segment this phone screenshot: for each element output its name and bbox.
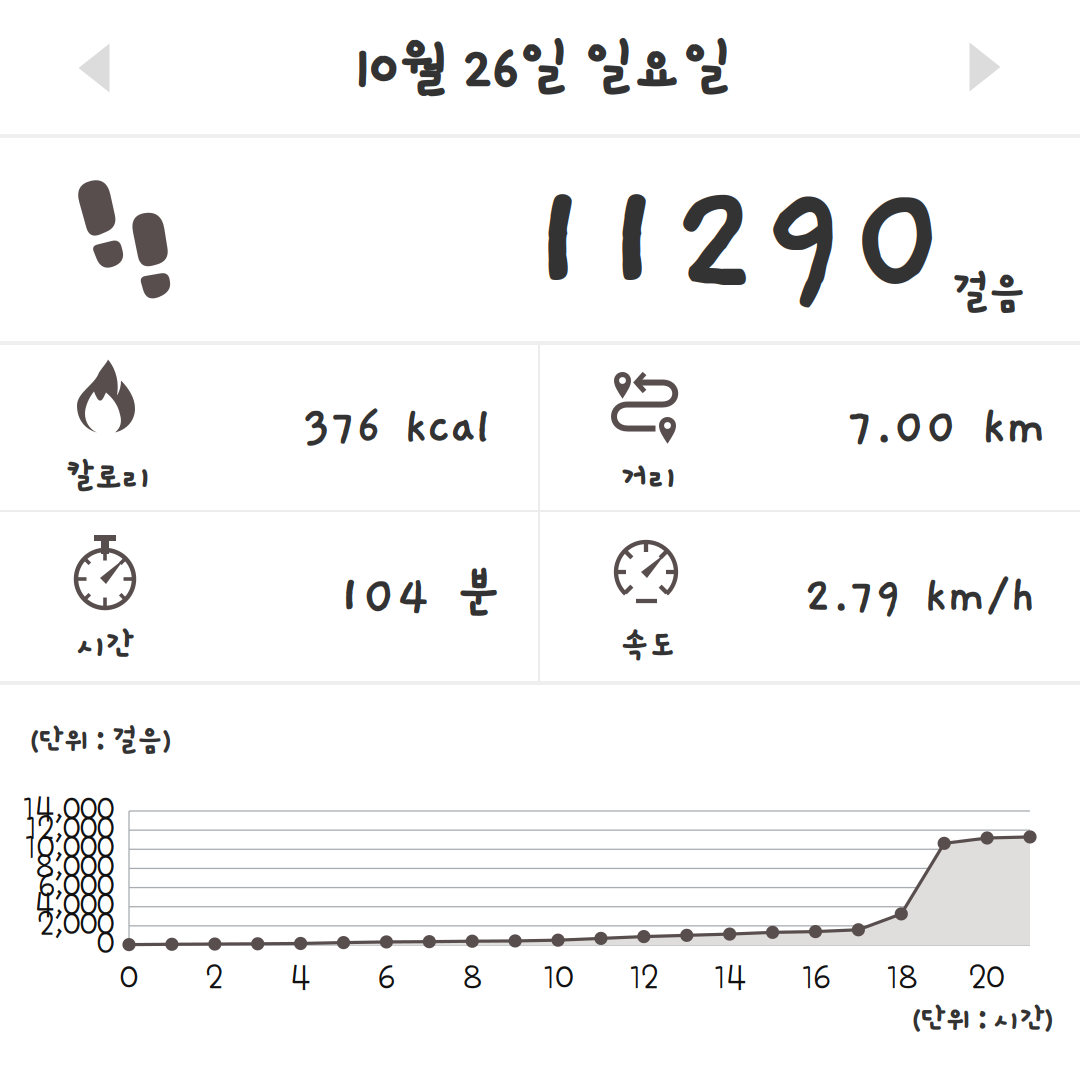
button[interactable]: Previous day xyxy=(29,8,159,128)
staticText: (단위 : 걸음) xyxy=(30,726,170,756)
staticText: 2 xyxy=(206,958,223,996)
staticText: 0 xyxy=(97,925,114,961)
staticText: (단위 : 시간) xyxy=(912,1005,1052,1035)
staticText: 4,000 xyxy=(35,887,114,923)
staticText: 걸음 xyxy=(952,271,1024,317)
staticText: 칼로리 xyxy=(66,460,150,494)
staticText: 거리 xyxy=(620,460,676,494)
staticText: 시간 xyxy=(77,629,133,663)
staticText: 376 kcal xyxy=(303,401,491,455)
staticText: 18 xyxy=(886,958,917,996)
staticText: 7.00 km xyxy=(847,400,1046,456)
staticText: 11290 xyxy=(523,156,949,330)
staticText: 2.79 km/h xyxy=(804,570,1036,624)
staticText: 10월 26일 일요일 xyxy=(354,38,729,100)
button[interactable]: Next day xyxy=(920,7,1050,127)
staticText: 10 xyxy=(542,958,573,996)
staticText: 12 xyxy=(629,958,659,996)
staticText: 104 분 xyxy=(337,568,502,626)
staticText: 8,000 xyxy=(36,848,114,884)
staticText: 4 xyxy=(291,958,311,996)
staticText: 14 xyxy=(713,958,746,996)
staticText: 12,000 xyxy=(25,810,114,846)
staticText: 16 xyxy=(801,958,830,996)
staticText: 2,000 xyxy=(38,906,114,942)
staticText: 6 xyxy=(378,958,394,996)
staticText: 20 xyxy=(970,958,1005,996)
staticText: 8 xyxy=(463,958,481,996)
staticText: 0 xyxy=(120,958,138,996)
staticText: 속도 xyxy=(620,629,676,663)
staticText: 14,000 xyxy=(22,791,114,827)
staticText: 10,000 xyxy=(24,829,114,865)
staticText: 6,000 xyxy=(39,868,114,904)
